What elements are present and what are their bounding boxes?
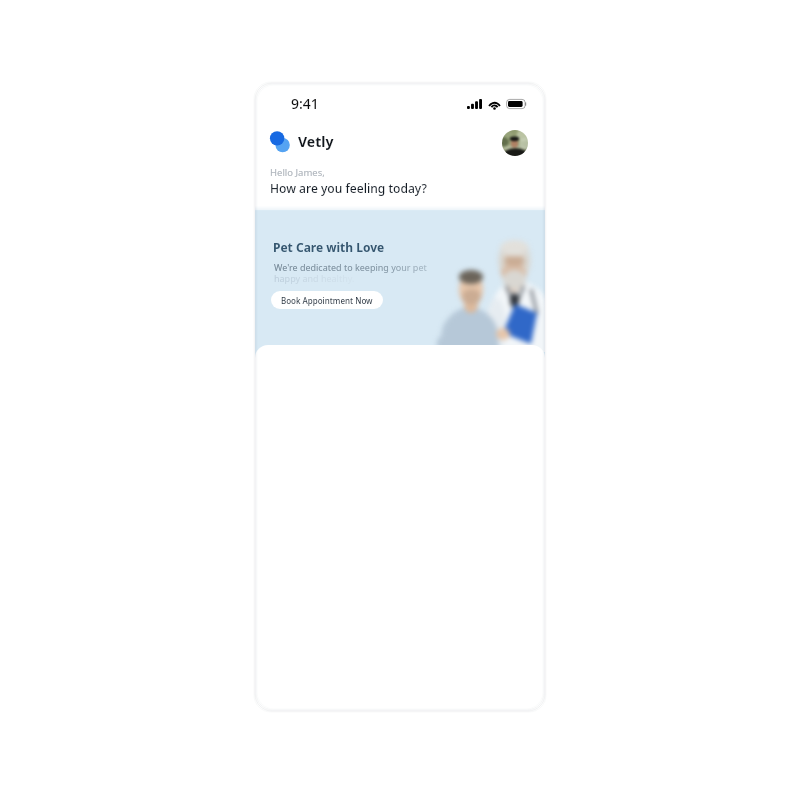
button[interactable]: Vetly xyxy=(268,129,334,153)
staticText: 9:41 xyxy=(291,94,319,113)
staticText: Vetly xyxy=(298,132,334,151)
staticText: happy and healthy. xyxy=(274,272,355,284)
staticText: Hello James, xyxy=(270,166,325,179)
staticText: How are you feeling today? xyxy=(270,180,427,196)
staticText: Pet Care with Love xyxy=(273,239,385,255)
staticText: We're dedicated to keeping your pet xyxy=(274,261,427,273)
staticText: Book Appointment Now xyxy=(281,295,373,306)
button[interactable]: Profile xyxy=(502,130,528,156)
button[interactable]: Book Appointment Now xyxy=(271,291,383,309)
